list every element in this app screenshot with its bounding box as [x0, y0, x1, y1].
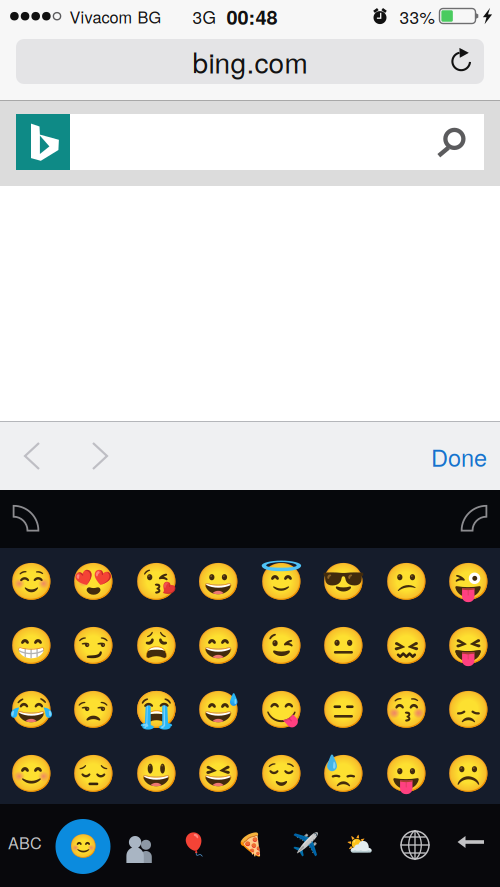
button[interactable]: Emoji: [375, 548, 437, 612]
button[interactable]: Emoji: [0, 740, 62, 804]
button[interactable]: bing.com: [16, 39, 484, 84]
button[interactable]: Emoji: [375, 676, 437, 740]
button[interactable]: Emoji: [375, 612, 437, 676]
staticText: 😜: [446, 560, 491, 603]
staticText: bing.com: [192, 41, 307, 82]
staticText: 😍: [71, 560, 116, 603]
staticText: 😒: [71, 688, 116, 731]
button[interactable]: Emoji: [250, 612, 312, 676]
staticText: 😋: [259, 688, 304, 731]
staticText: 🍕: [236, 832, 263, 857]
button[interactable]: Emoji: [125, 548, 187, 612]
button[interactable]: ABC: [0, 816, 52, 868]
staticText: 😀: [196, 560, 241, 603]
button[interactable]: Emoji: [437, 548, 500, 612]
button[interactable]: Emoji: [0, 548, 62, 612]
staticText: 😩: [134, 624, 179, 667]
button[interactable]: Frequently used: [123, 833, 155, 865]
button[interactable]: Emoji: [437, 676, 500, 740]
button[interactable]: Done: [416, 433, 500, 479]
button[interactable]: Objects and symbols: [334, 819, 384, 869]
button[interactable]: Hide predictions: [440, 490, 500, 548]
button[interactable]: Emoji: [250, 740, 312, 804]
button[interactable]: Emoji: [62, 740, 125, 804]
staticText: 33%: [399, 4, 434, 29]
staticText: 😎: [321, 560, 366, 603]
staticText: ☺️: [9, 560, 54, 603]
staticText: 😭: [134, 688, 179, 731]
button[interactable]: Bing: [16, 114, 70, 170]
staticText: 😖: [384, 624, 429, 667]
button[interactable]: Food and drink: [225, 819, 275, 869]
button[interactable]: Emoji: [0, 612, 62, 676]
button[interactable]: Emoji: [187, 676, 250, 740]
staticText: 😆: [196, 752, 241, 795]
staticText: 😉: [259, 624, 304, 667]
button[interactable]: Delete: [454, 826, 498, 858]
staticText: 😘: [134, 560, 179, 603]
button[interactable]: Emoji: [0, 676, 62, 740]
staticText: 😐: [321, 624, 366, 667]
staticText: 😏: [71, 624, 116, 667]
staticText: 😂: [9, 688, 54, 731]
staticText: 3G: [192, 4, 215, 29]
staticText: 😕: [384, 560, 429, 603]
staticText: ☹️: [446, 752, 491, 795]
staticText: 😁: [9, 624, 54, 667]
staticText: 😊: [68, 833, 97, 860]
button[interactable]: Emoji: [250, 548, 312, 612]
button[interactable]: Emoji: [62, 612, 125, 676]
staticText: ⛅: [345, 832, 372, 857]
staticText: ABC: [8, 831, 42, 854]
button[interactable]: Emoji: [187, 740, 250, 804]
staticText: 😃: [134, 752, 179, 795]
staticText: 😑: [321, 688, 366, 731]
button[interactable]: Next field: [76, 432, 124, 480]
staticText: 😛: [384, 752, 429, 795]
button[interactable]: Emoji: [250, 676, 312, 740]
button[interactable]: Emoji: [375, 740, 437, 804]
button[interactable]: Show predictions: [0, 490, 60, 548]
button[interactable]: Emoji: [125, 740, 187, 804]
button[interactable]: Travel and places: [280, 819, 330, 869]
button[interactable]: Emoji: [312, 740, 375, 804]
staticText: 😄: [196, 624, 241, 667]
staticText: 😞: [446, 688, 491, 731]
button[interactable]: Emoji: [312, 548, 375, 612]
button[interactable]: Emoji: [312, 676, 375, 740]
button[interactable]: Celebration: [168, 819, 218, 869]
staticText: ✈️: [291, 832, 318, 857]
button[interactable]: Search: [70, 114, 484, 170]
staticText: Vivacom BG: [69, 5, 161, 28]
button[interactable]: Emoji: [125, 612, 187, 676]
button[interactable]: Emoji: [187, 612, 250, 676]
button[interactable]: Previous field: [9, 432, 57, 480]
staticText: 🎈: [179, 832, 206, 857]
button[interactable]: Emoji: [437, 740, 500, 804]
button[interactable]: Emoji: [62, 676, 125, 740]
button[interactable]: Next keyboard: [393, 823, 437, 867]
staticText: 😇: [259, 560, 304, 603]
staticText: 😊: [9, 752, 54, 795]
button[interactable]: Smileys and people: [55, 819, 110, 874]
staticText: 😓: [321, 752, 366, 795]
staticText: 😝: [446, 624, 491, 667]
button[interactable]: Emoji: [187, 548, 250, 612]
staticText: 😔: [71, 752, 116, 795]
button[interactable]: Emoji: [62, 548, 125, 612]
staticText: 😅: [196, 688, 241, 731]
staticText: 😌: [259, 752, 304, 795]
staticText: Done: [431, 440, 487, 473]
staticText: 😚: [384, 688, 429, 731]
button[interactable]: Emoji: [312, 612, 375, 676]
button[interactable]: Emoji: [437, 612, 500, 676]
staticText: 00:48: [226, 2, 277, 31]
button[interactable]: Emoji: [125, 676, 187, 740]
